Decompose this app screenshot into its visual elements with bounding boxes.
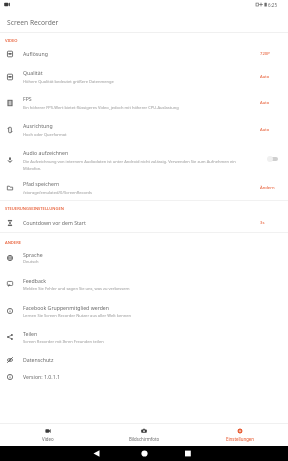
staticText: Countdown vor dem Start [23,219,86,226]
staticText: 6:25 [268,2,278,8]
staticText: Die Aufzeichnung von internem Audiodaten… [23,159,268,171]
staticText: Video [42,436,54,442]
button[interactable]: Bildschirmfoto [96,424,192,442]
staticText: Feedback [23,277,47,284]
staticText: Auto [260,100,270,106]
button[interactable]: Version: 1.0.1.1 [0,369,288,385]
button[interactable]: Pfad speichern [0,176,288,200]
staticText: Deutsch [23,259,255,265]
staticText: FPS [23,95,32,102]
staticText: Audio aufzeichnen [23,149,69,156]
button[interactable]: Sprache [0,247,288,269]
staticText: Screen Recorder [7,18,59,27]
staticText: Bildschirmfoto [129,436,160,442]
staticText: Höhere Qualität bedeutet größere Datenme… [23,79,255,85]
staticText: 3s [260,220,265,226]
staticText: 720P [260,51,270,57]
staticText: Qualität [23,69,43,76]
button[interactable]: FPS [0,91,288,115]
button[interactable]: Video [0,424,96,442]
button[interactable]: Feedback [0,273,288,296]
staticText: VIDEO [5,38,18,44]
staticText: Version: 1.0.1.1 [23,373,61,380]
staticText: Lernen Sie Screen Recorder Nutzer aus al… [23,313,255,319]
button[interactable]: Datenschutz [0,352,288,368]
staticText: Einstellungen [226,436,255,442]
staticText: Auto [260,74,270,80]
staticText: Ausrichtung [23,122,53,129]
button[interactable]: Facebook Gruppenmitglied werden [0,300,288,323]
staticText: Screen Recorder mit Ihren Freunden teile… [23,339,255,345]
staticText: Pfad speichern [23,180,60,187]
staticText: Sprache [23,251,43,258]
staticText: Ein höherer FPS-Wert bietet flüssigeres … [23,105,255,111]
button[interactable]: Qualität [0,65,288,89]
staticText: Hoch oder Querformat [23,132,255,138]
staticText: Melden Sie Fehler und sagen Sie uns, was… [23,286,255,292]
staticText: Ändern [260,185,275,191]
staticText: Datenschutz [23,356,54,363]
staticText: /storage/emulated/0/ScreenRecords [23,190,255,196]
staticText: Facebook Gruppenmitglied werden [23,304,109,311]
staticText: Auflösung [23,50,48,57]
staticText: ANDERE [5,240,21,246]
staticText: STEUERUNGSEINSTELLUNGEN [5,206,64,212]
button[interactable]: Audio aufzeichnen [0,145,288,175]
button[interactable]: Teilen [0,326,288,349]
button[interactable]: Ausrichtung [0,118,288,142]
staticText: Teilen [23,330,38,337]
button[interactable]: Auflösung [0,46,288,62]
button[interactable]: Einstellungen [192,424,288,442]
staticText: Auto [260,127,270,133]
button[interactable]: Countdown vor dem Start [0,215,288,231]
